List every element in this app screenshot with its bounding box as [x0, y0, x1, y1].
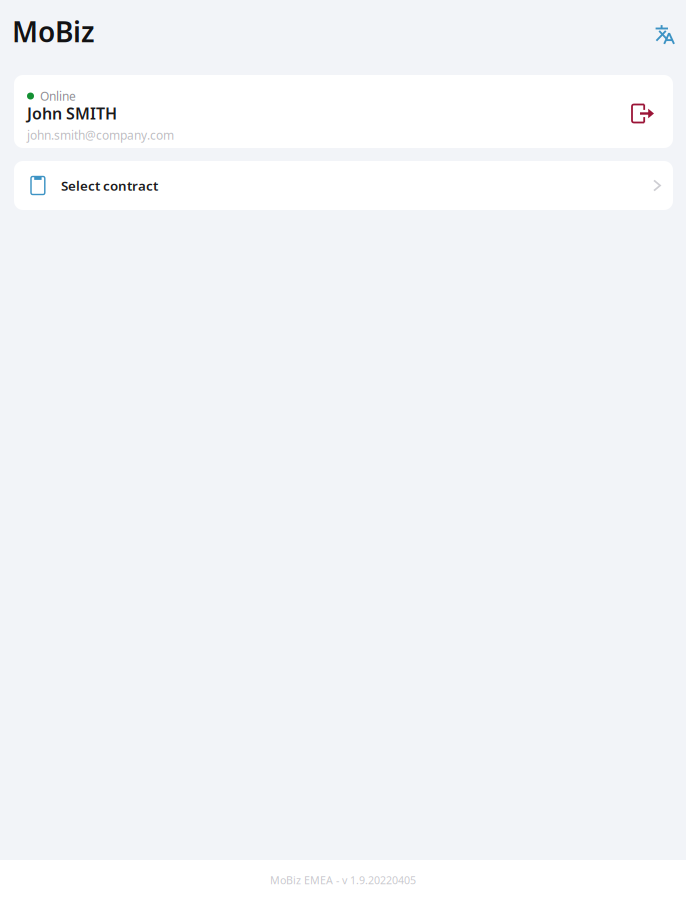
staticText: Online [40, 88, 76, 104]
staticText: john.smith@company.com [27, 127, 174, 143]
button[interactable]: Change language [646, 15, 681, 47]
button[interactable]: Log out [625, 95, 661, 127]
staticText: MoBiz [12, 13, 95, 50]
staticText: Select contract [61, 177, 158, 194]
button[interactable]: Select contract [14, 161, 673, 210]
staticText: MoBiz EMEA - v 1.9.20220405 [270, 873, 416, 887]
staticText: John SMITH [27, 103, 117, 124]
